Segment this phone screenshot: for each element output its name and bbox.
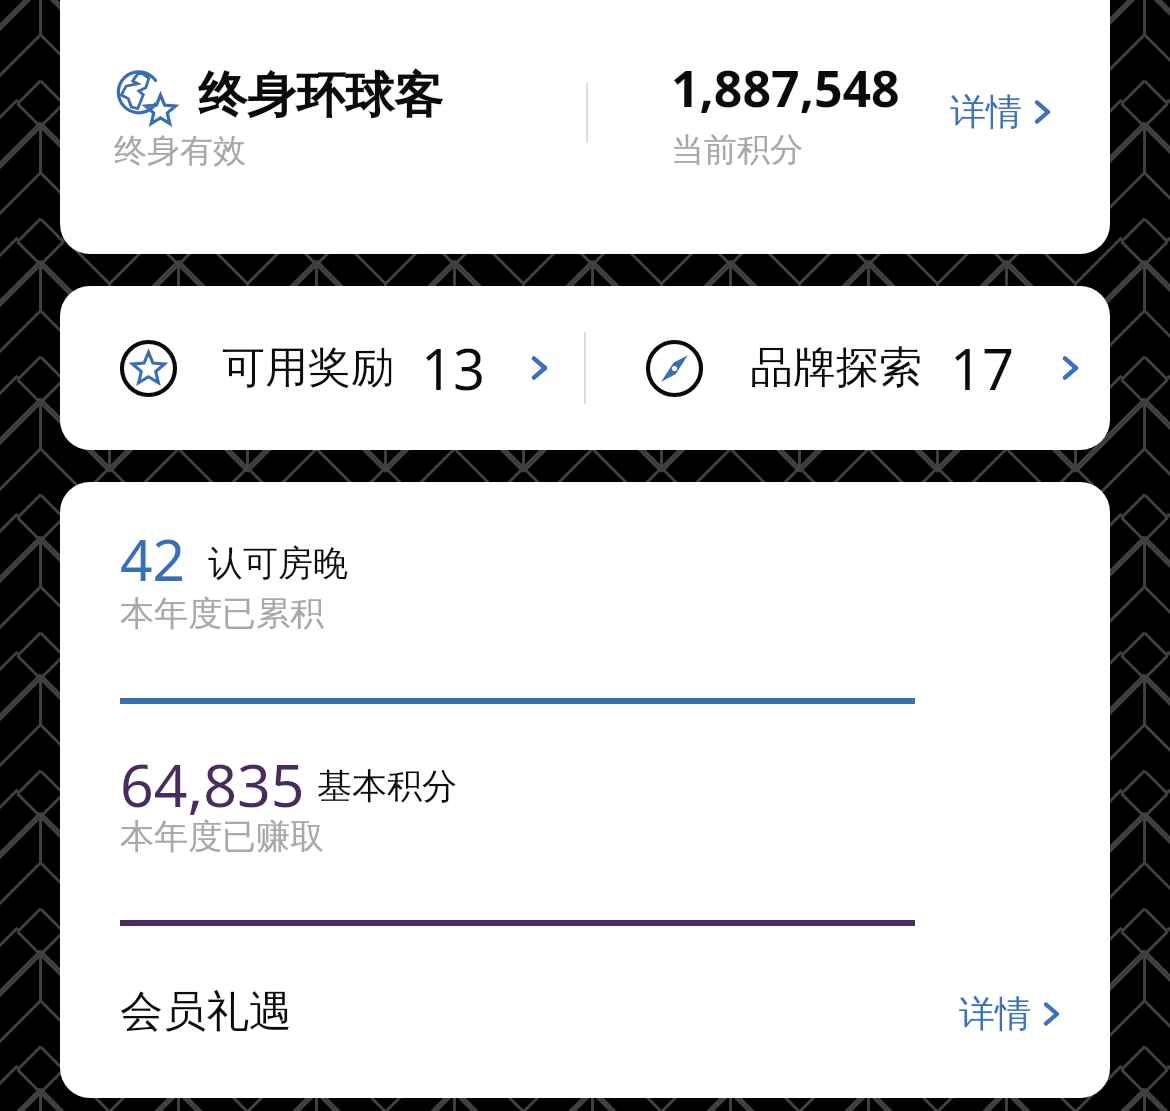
- staticText: 详情: [959, 991, 1031, 1036]
- staticText: 13: [421, 330, 486, 406]
- staticText: 1,887,548: [671, 54, 900, 122]
- staticText: 当前积分: [671, 129, 803, 171]
- button[interactable]: 详情: [950, 89, 1057, 134]
- staticText: 会员礼遇: [120, 985, 292, 1039]
- staticText: 42: [120, 520, 186, 598]
- button[interactable]: 可用奖励: [120, 286, 600, 450]
- staticText: 详情: [950, 89, 1022, 134]
- button[interactable]: 详情: [959, 991, 1066, 1036]
- staticText: 品牌探索: [750, 341, 922, 395]
- staticText: 可用奖励: [222, 341, 394, 395]
- staticText: 终身有效: [114, 130, 246, 172]
- button[interactable]: 品牌探索: [646, 286, 1110, 450]
- staticText: 认可房晚: [208, 541, 348, 585]
- staticText: 本年度已累积: [120, 592, 324, 635]
- staticText: 本年度已赚取: [120, 815, 324, 858]
- staticText: 终身环球客: [198, 65, 443, 127]
- staticText: 64,835: [120, 744, 305, 824]
- staticText: 基本积分: [317, 764, 457, 808]
- staticText: 17: [950, 330, 1015, 406]
